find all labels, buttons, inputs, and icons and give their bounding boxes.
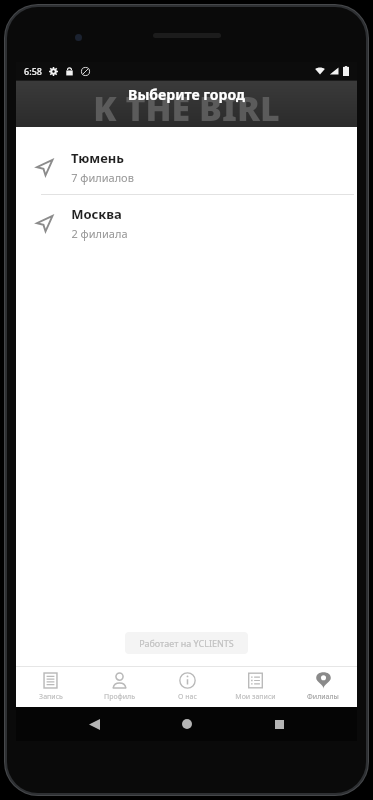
staticText: 2 филиала	[71, 226, 128, 241]
staticText: О нас	[178, 692, 197, 702]
button[interactable]: Профиль	[85, 667, 153, 707]
button[interactable]: Мои записи	[221, 667, 289, 707]
button[interactable]: Москва	[19, 195, 354, 250]
button[interactable]: Запись	[16, 667, 85, 707]
button[interactable]: Филиалы	[289, 667, 357, 707]
staticText: 6:58	[24, 65, 42, 77]
button[interactable]: Работает на YCLIENTS	[125, 632, 248, 654]
button[interactable]: Тюмень	[19, 139, 354, 194]
button[interactable]: О нас	[153, 667, 221, 707]
staticText: Работает на YCLIENTS	[139, 637, 234, 649]
staticText: Москва	[71, 205, 122, 223]
staticText: K THE BIRL	[93, 85, 280, 131]
staticText: Запись	[39, 692, 63, 702]
staticText: Филиалы	[307, 692, 339, 702]
staticText: Тюмень	[71, 149, 124, 167]
button[interactable]: Home	[172, 709, 202, 739]
staticText: Выберите город	[128, 85, 245, 104]
button[interactable]: Back	[79, 709, 109, 739]
button[interactable]: Recent apps	[264, 709, 294, 739]
staticText: Профиль	[104, 692, 135, 702]
staticText: Мои записи	[235, 692, 276, 702]
staticText: 7 филиалов	[71, 170, 134, 185]
